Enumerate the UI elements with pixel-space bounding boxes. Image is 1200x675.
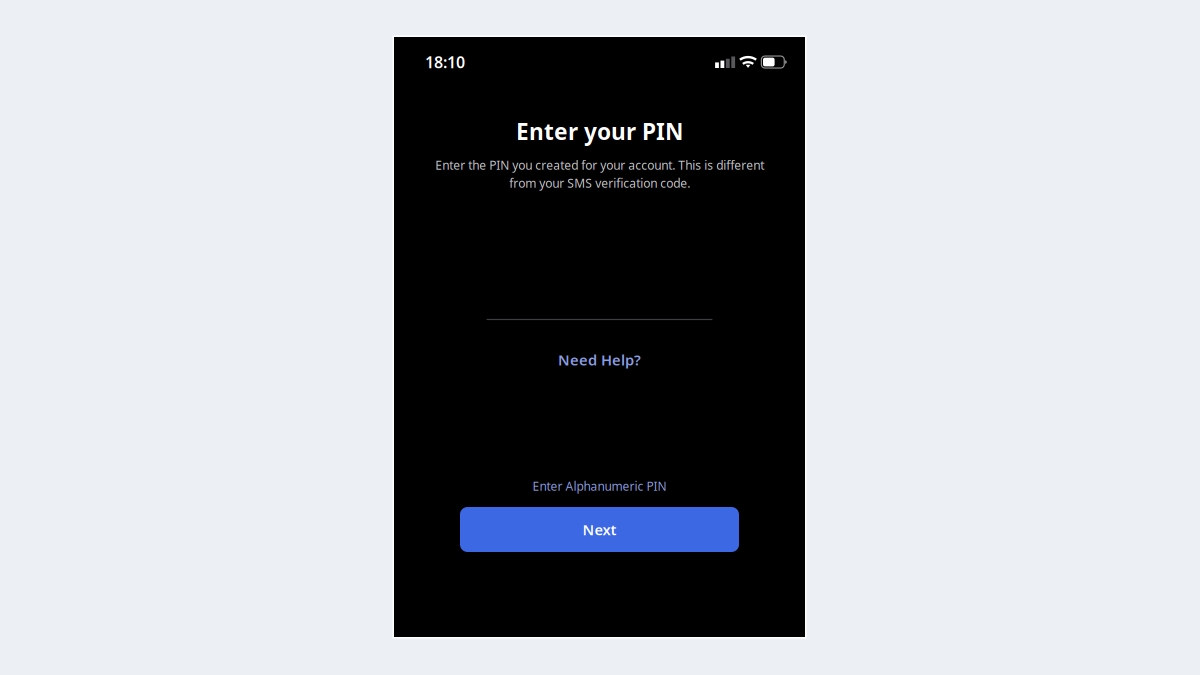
- staticText: Need Help?: [558, 350, 641, 370]
- button[interactable]: Need Help?: [540, 344, 659, 376]
- button[interactable]: PIN: [486, 298, 712, 320]
- staticText: Enter Alphanumeric PIN: [532, 478, 666, 494]
- staticText: 18:10: [425, 51, 465, 73]
- staticText: Enter the PIN you created for your accou…: [435, 157, 764, 191]
- button[interactable]: Enter Alphanumeric PIN: [518, 472, 680, 500]
- button[interactable]: Next: [460, 507, 739, 552]
- staticText: Enter your PIN: [516, 116, 683, 146]
- staticText: Next: [582, 520, 616, 539]
